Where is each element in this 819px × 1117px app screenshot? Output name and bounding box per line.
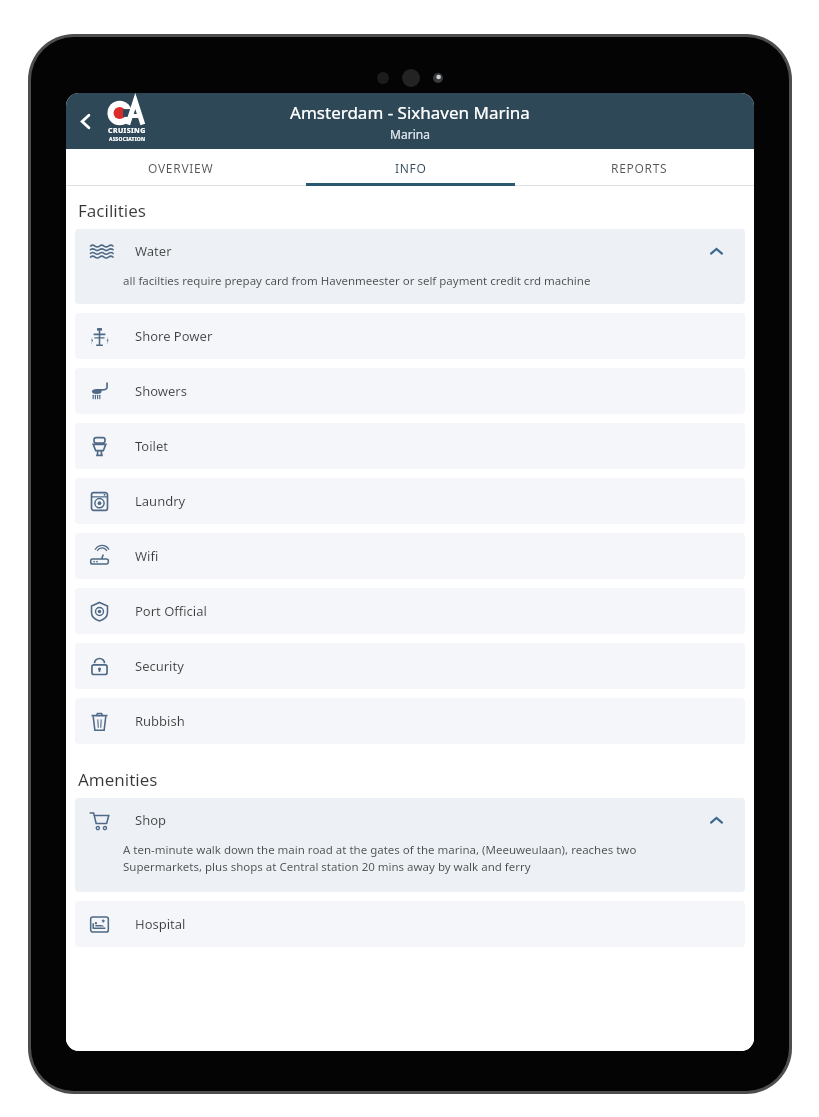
button[interactable]: OVERVIEW <box>66 149 296 186</box>
staticText: Laundry <box>135 492 186 510</box>
staticText: Security <box>135 657 184 675</box>
button[interactable]: Showers <box>75 368 745 414</box>
staticText: INFO <box>395 160 427 176</box>
button[interactable]: REPORTS <box>525 149 754 186</box>
staticText: Facilities <box>78 199 146 222</box>
button[interactable]: Back <box>69 105 101 137</box>
staticText: REPORTS <box>611 160 668 176</box>
staticText: Toilet <box>135 437 168 455</box>
staticText: Wifi <box>135 547 159 565</box>
staticText: Rubbish <box>135 712 185 730</box>
button[interactable]: Shop <box>75 798 745 892</box>
staticText: Amenities <box>78 768 158 791</box>
button[interactable]: Port Official <box>75 588 745 634</box>
staticText: CRUISING <box>108 126 146 136</box>
button[interactable]: Water <box>75 229 745 304</box>
staticText: Shop <box>135 811 167 829</box>
staticText: Hospital <box>135 915 186 933</box>
button[interactable]: INFO <box>296 149 525 186</box>
staticText: A ten-minute walk down the main road at … <box>123 842 701 875</box>
button[interactable]: Security <box>75 643 745 689</box>
button[interactable]: Toilet <box>75 423 745 469</box>
button[interactable]: Rubbish <box>75 698 745 744</box>
staticText: Amsterdam - Sixhaven Marina <box>290 101 530 124</box>
button[interactable]: Shore Power <box>75 313 745 359</box>
button[interactable]: Cruising Association logo <box>97 96 157 146</box>
button[interactable]: Collapse Shop <box>704 808 728 832</box>
button[interactable]: Wifi <box>75 533 745 579</box>
button[interactable]: Hospital <box>75 901 745 947</box>
staticText: Marina <box>390 126 430 142</box>
staticText: Port Official <box>135 602 207 620</box>
staticText: ASSOCIATION <box>109 136 146 143</box>
staticText: Showers <box>135 382 187 400</box>
button[interactable]: Collapse Water <box>704 239 728 263</box>
staticText: OVERVIEW <box>148 160 214 176</box>
staticText: Water <box>135 242 172 260</box>
button[interactable]: Laundry <box>75 478 745 524</box>
staticText: all facilties require prepay card from H… <box>123 273 591 289</box>
staticText: Shore Power <box>135 327 213 345</box>
